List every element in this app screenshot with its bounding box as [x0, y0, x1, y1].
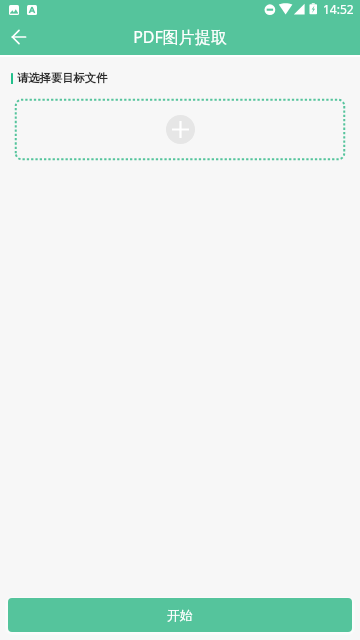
staticText: 开始 — [167, 607, 193, 623]
button[interactable]: Add file — [15, 99, 345, 160]
staticText: 14:52 — [323, 1, 354, 17]
button[interactable]: 开始 — [8, 598, 352, 632]
staticText: PDF图片提取 — [133, 26, 227, 48]
staticText: 请选择要目标文件 — [17, 71, 108, 85]
button[interactable]: Back — [4, 22, 34, 52]
